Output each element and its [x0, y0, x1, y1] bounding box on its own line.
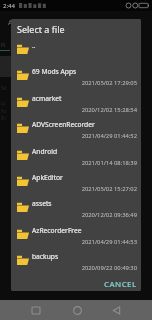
- button[interactable]: Home: [63, 300, 91, 320]
- button[interactable]: ADVScreenRecorder: [11, 120, 141, 146]
- staticText: A: [8, 18, 13, 28]
- button[interactable]: Android: [11, 147, 141, 173]
- staticText: 2020/12/02 15:28:54: [32, 106, 137, 114]
- staticText: 2:44: [3, 2, 15, 10]
- staticText: 2021/04/29 01:44:52: [32, 132, 137, 140]
- button[interactable]: 69 Mods Apps: [11, 67, 141, 93]
- button[interactable]: AzRecorderFree: [11, 226, 141, 252]
- staticText: 2020/09/22 00:49:30: [32, 264, 137, 272]
- staticText: St: [1, 84, 7, 92]
- staticText: Select a file: [17, 23, 65, 35]
- staticText: Fi: [1, 41, 6, 49]
- button[interactable]: ApkEditor: [11, 173, 141, 199]
- staticText: 2021/05/02 17:29:05: [32, 79, 137, 87]
- staticText: AzRecorderFree: [32, 226, 82, 235]
- staticText: 69 Mods Apps: [32, 67, 77, 76]
- staticText: ApkEditor: [32, 173, 63, 182]
- staticText: Fi: [1, 100, 6, 108]
- staticText: Android: [32, 147, 58, 156]
- staticText: ..: [32, 41, 36, 50]
- button[interactable]: backups: [11, 252, 141, 278]
- button[interactable]: assets: [11, 199, 141, 225]
- staticText: 2021/04/29 01:44:53: [32, 238, 137, 246]
- staticText: acmarket: [32, 94, 62, 103]
- button[interactable]: CANCEL: [101, 277, 140, 291]
- button[interactable]: acmarket: [11, 94, 141, 120]
- staticText: backups: [32, 252, 59, 261]
- button[interactable]: ..: [11, 41, 141, 67]
- staticText: CANCEL: [104, 279, 137, 290]
- staticText: 2021/01/14 08:18:39: [32, 159, 137, 167]
- button[interactable]: Back: [102, 300, 130, 320]
- staticText: 2020/12/02 09:36:49: [32, 211, 137, 219]
- staticText: fo: [1, 107, 7, 115]
- button[interactable]: Recents: [22, 300, 50, 320]
- staticText: ADVScreenRecorder: [32, 120, 95, 129]
- staticText: 2021/05/02 15:27:02: [32, 185, 137, 193]
- staticText: Er: [1, 114, 7, 122]
- staticText: assets: [32, 199, 52, 208]
